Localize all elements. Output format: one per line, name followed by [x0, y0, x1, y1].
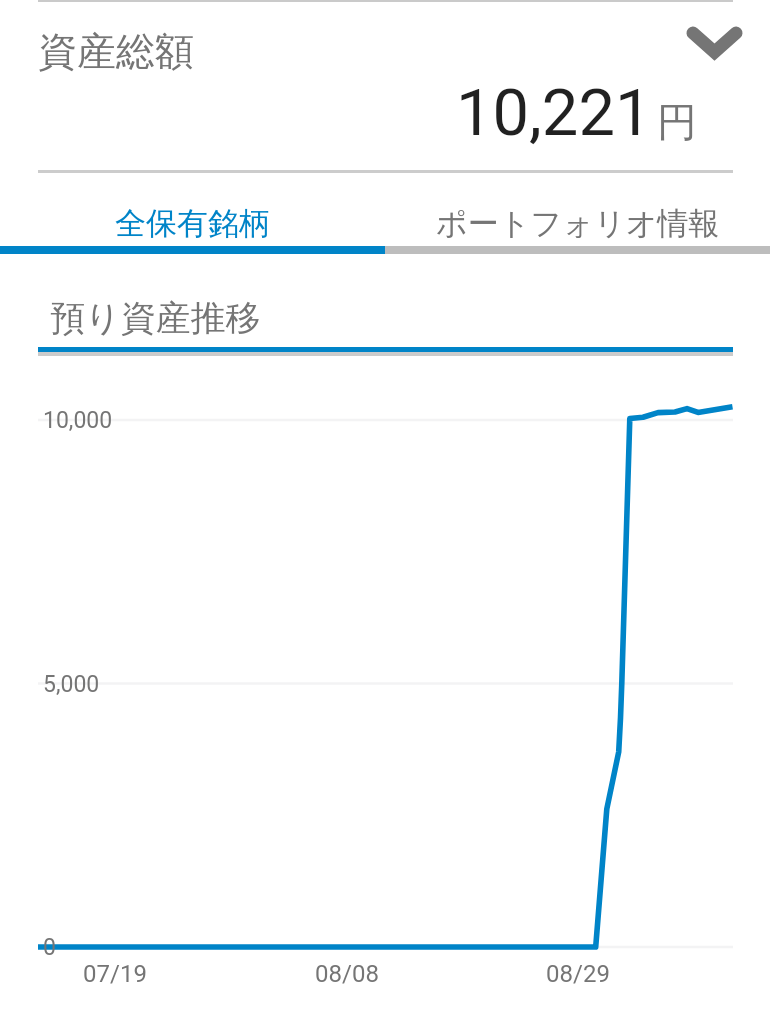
staticText: 5,000 — [43, 671, 100, 698]
staticText: 預り資産推移 — [50, 296, 261, 340]
button[interactable]: ポートフォリオ情報 — [385, 186, 770, 260]
button[interactable]: Collapse asset total — [672, 0, 756, 84]
button[interactable]: 資産総額 — [38, 14, 278, 84]
staticText: 10,000 — [43, 407, 113, 434]
staticText: 08/08 — [315, 960, 379, 988]
staticText: 07/19 — [83, 960, 147, 988]
staticText: 円 — [657, 97, 697, 147]
staticText: 0 — [43, 934, 56, 961]
staticText: 10,221 — [456, 75, 652, 151]
staticText: ポートフォリオ情報 — [436, 204, 720, 243]
staticText: 08/29 — [546, 960, 610, 988]
staticText: 全保有銘柄 — [115, 204, 270, 243]
button[interactable]: 全保有銘柄 — [0, 186, 385, 260]
staticText: 資産総額 — [38, 27, 194, 76]
